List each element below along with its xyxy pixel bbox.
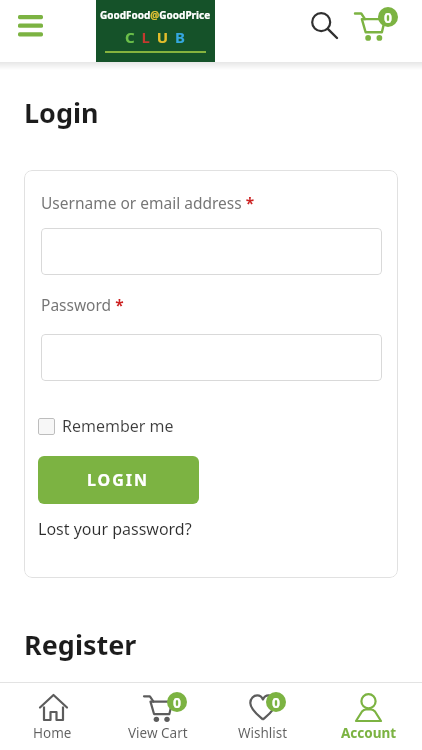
staticText: Password * — [41, 294, 124, 315]
button[interactable]: Account — [316, 683, 422, 750]
staticText: Wishlist — [238, 724, 288, 742]
button[interactable]: Remember me — [38, 415, 174, 437]
button[interactable] — [308, 9, 342, 43]
staticText: Username or email address * — [41, 192, 255, 213]
staticText: Account — [341, 724, 397, 742]
button[interactable]: Lost your password? — [38, 518, 192, 540]
staticText: C L U B — [125, 27, 187, 47]
staticText: 0 — [272, 693, 281, 712]
staticText: Register — [24, 626, 137, 663]
staticText: View Cart — [128, 724, 188, 742]
staticText: GoodFood@GoodPrice — [100, 8, 211, 22]
button[interactable] — [41, 334, 382, 381]
button[interactable]: LOGIN — [38, 456, 199, 504]
staticText: LOGIN — [87, 469, 150, 491]
button[interactable]: 0 — [210, 683, 316, 750]
button[interactable]: Home — [0, 683, 105, 750]
button[interactable]: 0 — [105, 683, 210, 750]
staticText: 0 — [173, 693, 182, 712]
staticText: 0 — [384, 8, 393, 27]
button[interactable] — [41, 228, 382, 275]
staticText: Remember me — [62, 415, 174, 437]
button[interactable]: GoodFood@GoodPrice — [96, 0, 215, 62]
button[interactable]: 0 — [352, 2, 402, 48]
staticText: Login — [24, 94, 99, 131]
button[interactable] — [18, 14, 44, 38]
staticText: Home — [33, 724, 72, 742]
